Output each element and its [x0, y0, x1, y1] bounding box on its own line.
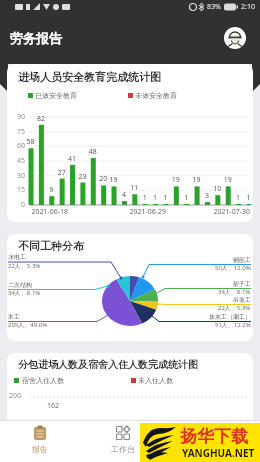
- button[interactable]: 扬华下载: [140, 423, 260, 462]
- staticText: 进场人员安全教育完成统计图: [18, 70, 161, 84]
- button[interactable]: 不同工种分布: [7, 234, 253, 341]
- staticText: 2:10: [241, 2, 255, 12]
- staticText: 不同工种分布: [18, 239, 84, 253]
- staticText: 分包进场人数及宿舍入住人数完成统计图: [18, 358, 198, 371]
- staticText: 劳务报告: [10, 30, 62, 46]
- button[interactable]: 工作台: [103, 425, 143, 454]
- staticText: 工作台: [111, 444, 135, 454]
- button[interactable]: 分包进场人数及宿舍入住人数完成统计图: [7, 353, 253, 420]
- button[interactable]: [224, 27, 246, 49]
- button[interactable]: 报告: [20, 425, 60, 454]
- staticText: 83%: [207, 2, 221, 12]
- staticText: 扬华下载: [180, 426, 248, 447]
- staticText: 报告: [32, 444, 48, 454]
- button[interactable]: 进场人员安全教育完成统计图: [7, 64, 253, 222]
- staticText: YANGHUA.NET: [182, 446, 255, 460]
